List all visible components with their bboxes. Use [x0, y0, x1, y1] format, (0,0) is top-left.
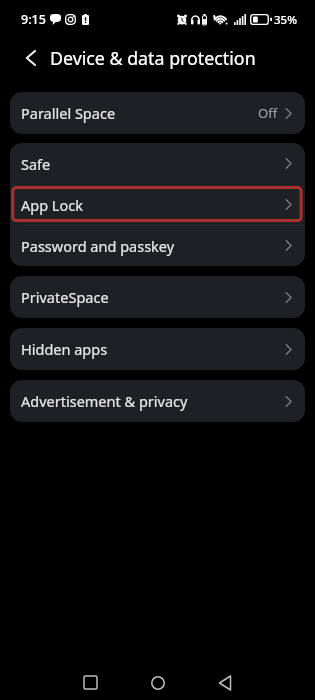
button[interactable]: Back: [212, 670, 237, 695]
button[interactable]: Advertisement & privacy: [10, 380, 305, 422]
staticText: Off: [258, 104, 278, 122]
button[interactable]: Safe: [10, 143, 305, 184]
button[interactable]: App Lock: [10, 184, 305, 225]
button[interactable]: Back: [0, 39, 44, 76]
staticText: Parallel Space: [21, 103, 116, 123]
button[interactable]: Recent apps: [78, 670, 103, 695]
staticText: PrivateSpace: [21, 287, 109, 307]
staticText: Password and passkey: [21, 236, 175, 256]
staticText: Hidden apps: [21, 339, 108, 359]
button[interactable]: Parallel Space: [10, 92, 305, 134]
staticText: App Lock: [21, 195, 83, 215]
button[interactable]: PrivateSpace: [10, 276, 305, 318]
staticText: 35%: [274, 12, 297, 28]
button[interactable]: Password and passkey: [10, 225, 305, 266]
staticText: 9:15: [21, 11, 46, 28]
staticText: Safe: [21, 154, 51, 174]
button[interactable]: Hidden apps: [10, 328, 305, 370]
button[interactable]: Home: [145, 670, 170, 695]
staticText: Advertisement & privacy: [21, 391, 188, 411]
staticText: Device & data protection: [50, 46, 256, 70]
